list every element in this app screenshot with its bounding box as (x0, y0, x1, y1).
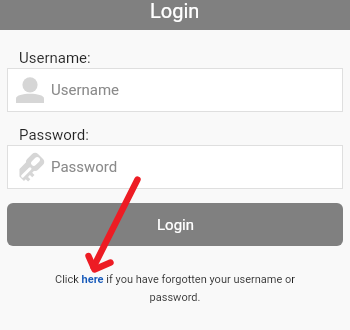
staticText: Username: (19, 49, 91, 67)
staticText: Login (157, 216, 194, 234)
button[interactable]: Click here if you have forgotten your us… (45, 273, 305, 304)
button[interactable]: Login (7, 203, 343, 246)
staticText: Password (51, 158, 118, 176)
staticText: Password: (19, 126, 89, 144)
button[interactable]: Password (7, 145, 343, 189)
staticText: Username (51, 81, 120, 99)
staticText: Login (150, 0, 200, 22)
staticText: Click here if you have forgotten your us… (45, 273, 305, 304)
button[interactable]: Username (7, 68, 343, 112)
